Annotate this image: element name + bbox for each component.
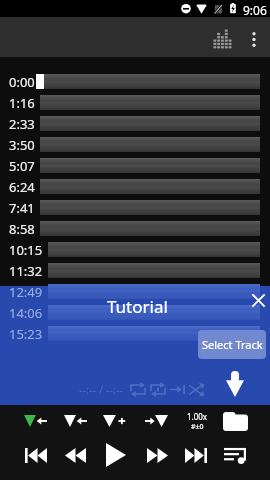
staticText: 11:32 [9,262,43,280]
button[interactable]: Fast forward [138,438,176,472]
button[interactable]: Repeat [128,378,148,400]
button[interactable]: 8:58 [0,218,270,239]
button[interactable]: Previous bookmark [21,408,49,434]
button[interactable]: 3:50 [0,134,270,155]
staticText: 9:06 [243,2,267,18]
staticText: 5:07 [9,157,35,175]
staticText: 12:49 [9,283,43,301]
button[interactable]: Playlist [216,438,254,472]
button[interactable]: Equalizer [202,19,242,59]
staticText: Select Track [202,337,263,352]
button[interactable]: Rewind [56,438,94,472]
button[interactable]: Previous mark [61,408,89,434]
button[interactable]: Repeat one [148,378,168,400]
button[interactable]: 10:15 [0,239,270,260]
button[interactable]: Select Track [198,330,266,359]
button[interactable]: Previous track [17,438,55,472]
staticText: --:-- / --:-- [79,382,124,397]
staticText: 1.00x [187,411,208,422]
button[interactable]: 11:32 [0,260,270,281]
button[interactable]: 1.00x [176,409,218,433]
button[interactable]: --:-- / --:-- [62,379,124,399]
staticText: 15:23 [9,325,43,343]
staticText: 10:15 [9,241,43,259]
staticText: 3:50 [9,136,35,154]
staticText: Tutorial [107,295,168,318]
button[interactable]: 15:23 [0,323,270,344]
button[interactable]: More options [238,23,270,55]
staticText: 1:16 [9,94,35,112]
button[interactable]: Add mark [100,408,128,434]
staticText: 6:24 [9,178,35,196]
button[interactable]: 5:07 [0,155,270,176]
staticText: 2:33 [9,115,35,133]
button[interactable]: Open folder [221,407,249,435]
button[interactable]: 12:49 [0,281,270,302]
staticText: 8:58 [9,220,35,238]
staticText: #±0 [191,422,204,432]
button[interactable]: 14:06 [0,302,270,323]
button[interactable]: Close tutorial [244,286,270,315]
button[interactable]: Next track [177,438,215,472]
button[interactable]: Next mark [142,408,170,434]
button[interactable]: 0:00 [0,71,270,92]
staticText: 14:06 [9,304,43,322]
button[interactable]: 2:33 [0,113,270,134]
button[interactable]: Shuffle [187,378,207,400]
staticText: 0:00 [9,73,35,91]
button[interactable]: Jump to end [168,378,188,400]
button[interactable]: 1:16 [0,92,270,113]
button[interactable]: Play [97,438,135,472]
button[interactable]: 7:41 [0,197,270,218]
staticText: 7:41 [9,199,35,217]
button[interactable]: 6:24 [0,176,270,197]
